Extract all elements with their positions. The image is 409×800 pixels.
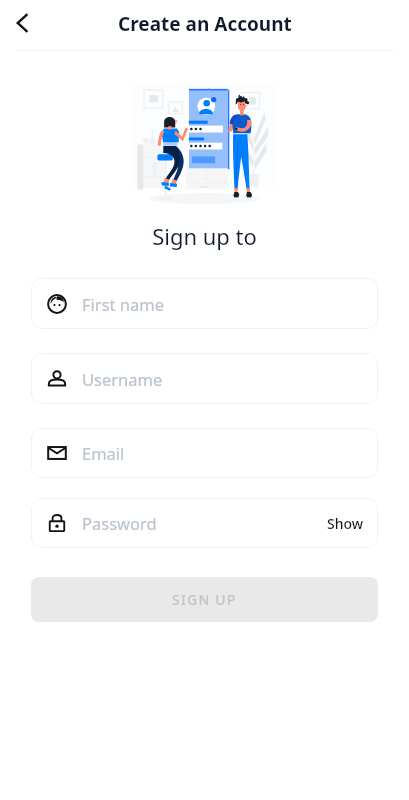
button[interactable]: First name: [31, 278, 378, 329]
staticText: Create an Account: [118, 11, 292, 37]
staticText: Username: [82, 368, 364, 390]
button[interactable]: Password: [31, 498, 378, 548]
staticText: SIGN UP: [172, 590, 237, 609]
staticText: Password: [82, 512, 327, 534]
button[interactable]: Back: [2, 5, 44, 40]
staticText: First name: [82, 293, 364, 315]
staticText: Show: [327, 514, 364, 533]
staticText: Sign up to: [0, 221, 409, 251]
button[interactable]: Show: [327, 508, 364, 539]
button[interactable]: Email: [31, 428, 378, 478]
button[interactable]: Username: [31, 353, 378, 404]
button[interactable]: SIGN UP: [31, 577, 378, 622]
staticText: Email: [82, 442, 364, 464]
